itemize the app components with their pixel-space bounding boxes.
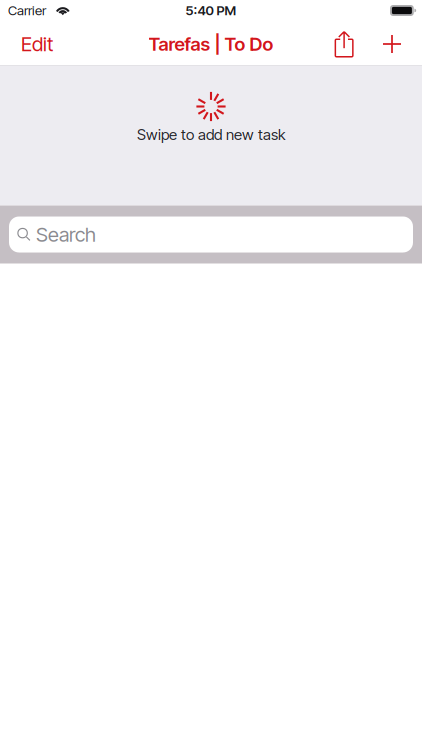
staticText: Swipe to add new task: [137, 125, 285, 144]
staticText: 5:40 PM: [185, 2, 236, 18]
button[interactable]: Share: [327, 24, 361, 64]
staticText: Tarefas | To Do: [148, 33, 273, 55]
staticText: Carrier: [8, 2, 46, 18]
button[interactable]: Search: [9, 216, 413, 252]
staticText: Search: [36, 222, 96, 247]
button[interactable]: Edit: [13, 24, 61, 64]
button[interactable]: Add new task: [375, 24, 409, 64]
staticText: Edit: [21, 32, 53, 56]
